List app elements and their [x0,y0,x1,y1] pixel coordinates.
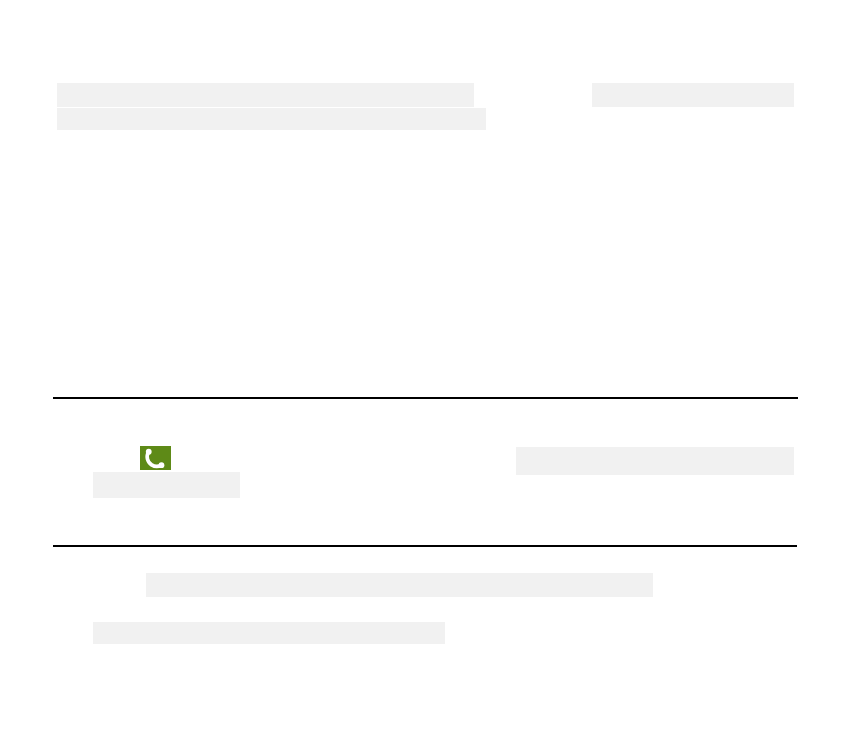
button[interactable]: Call [140,446,171,470]
